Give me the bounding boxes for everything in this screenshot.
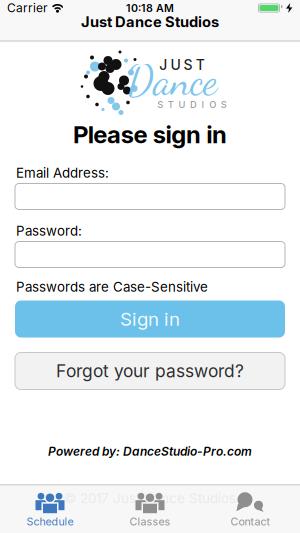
staticText: Sign in (120, 308, 180, 330)
staticText: Email Address: (16, 165, 109, 181)
staticText: T (196, 56, 205, 73)
staticText: S (184, 56, 193, 73)
button[interactable]: Sign in (0, 300, 300, 337)
staticText: Forgot your password? (56, 361, 244, 381)
staticText: Schedule (26, 515, 73, 528)
staticText: 10:18 AM (126, 2, 174, 14)
staticText: Just Dance Studios (81, 13, 219, 31)
button[interactable]: Contact (200, 485, 300, 533)
staticText: Passwords are Case-Sensitive (16, 279, 208, 295)
staticText: Contact (230, 515, 269, 528)
button[interactable]: Forgot your password? (0, 352, 300, 389)
button[interactable]: Powered by: DanceStudio-Pro.com (48, 444, 252, 458)
button[interactable]: Email Address (0, 183, 300, 209)
staticText: U (170, 56, 180, 73)
staticText: Dance (126, 56, 217, 105)
staticText: Please sign in (73, 120, 227, 149)
staticText: Carrier (7, 1, 48, 15)
button[interactable]: Classes (100, 485, 200, 533)
staticText: J (159, 56, 167, 73)
staticText: Classes (129, 515, 170, 528)
staticText: © 2017 Just Dance Studios (64, 491, 236, 506)
staticText: Password: (16, 223, 82, 239)
staticText: Powered by: DanceStudio-Pro.com (48, 444, 252, 459)
button[interactable]: Schedule (0, 485, 100, 533)
staticText: STUDIOS (157, 99, 227, 110)
button[interactable]: Password (0, 241, 300, 267)
